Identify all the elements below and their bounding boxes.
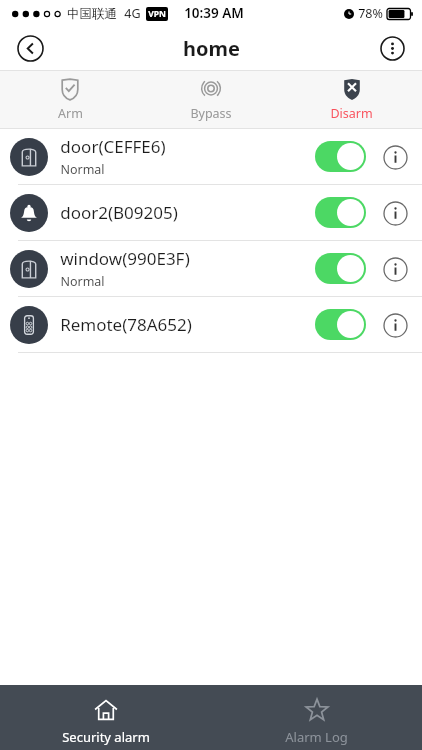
button[interactable]: door2(B09205) — [0, 185, 422, 240]
staticText: 78% — [358, 5, 383, 22]
staticText: door2(B09205) — [60, 201, 178, 224]
staticText: door(CEFFE6) — [60, 135, 166, 158]
staticText: Disarm — [330, 105, 373, 122]
button[interactable]: Info — [380, 142, 410, 172]
button[interactable]: Toggle device — [315, 253, 366, 284]
button[interactable]: Alarm Log — [211, 685, 422, 746]
button[interactable]: door(CEFFE6) — [0, 129, 422, 184]
button[interactable]: Remote(78A652) — [0, 297, 422, 352]
staticText: 中国联通 — [67, 6, 117, 22]
button[interactable]: Disarm — [281, 71, 422, 122]
staticText: Normal — [60, 273, 105, 290]
button[interactable]: Toggle device — [315, 309, 366, 340]
button[interactable]: Toggle device — [315, 197, 366, 228]
button[interactable]: Info — [380, 310, 410, 340]
staticText: 10:39 AM — [184, 4, 244, 22]
staticText: Alarm Log — [285, 728, 348, 746]
button[interactable]: Back — [12, 30, 48, 66]
button[interactable]: Toggle device — [315, 141, 366, 172]
staticText: home — [183, 35, 240, 62]
staticText: 4G — [124, 5, 141, 22]
button[interactable]: Arm — [0, 71, 140, 122]
button[interactable]: window(990E3F) — [0, 241, 422, 296]
staticText: Bypass — [190, 105, 232, 122]
staticText: Normal — [60, 161, 105, 178]
staticText: VPN — [148, 8, 166, 20]
button[interactable]: Info — [380, 254, 410, 284]
button[interactable]: Bypass — [140, 71, 281, 122]
button[interactable]: More options — [374, 30, 410, 66]
staticText: Remote(78A652) — [60, 313, 192, 336]
staticText: Arm — [58, 105, 83, 122]
staticText: Security alarm — [62, 728, 150, 746]
button[interactable]: Info — [380, 198, 410, 228]
staticText: window(990E3F) — [60, 247, 190, 270]
button[interactable]: Security alarm — [0, 685, 211, 746]
